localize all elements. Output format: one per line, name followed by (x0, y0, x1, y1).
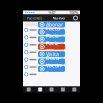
staticText: 9:41 (48, 10, 55, 15)
staticText: Abonar (46, 21, 63, 28)
button[interactable]: Tab (34, 86, 46, 92)
staticText: Vacuna (46, 62, 63, 76)
button[interactable]: Vacuna (38, 66, 65, 72)
staticText: Documento (46, 54, 62, 69)
button[interactable]: Pacientes (25, 15, 43, 21)
staticText: Nuevo (52, 15, 64, 21)
staticText: Factura (46, 25, 62, 39)
button[interactable]: Tab (69, 86, 80, 92)
button[interactable]: Tab (57, 86, 69, 92)
button[interactable]: Factura (38, 29, 65, 35)
button[interactable]: Tab (46, 86, 57, 92)
button[interactable]: Row (23, 41, 39, 48)
button[interactable]: Documento (38, 58, 65, 64)
staticText: Paciente (46, 40, 61, 54)
button[interactable]: Add (73, 16, 77, 20)
staticText: ••••• (25, 10, 35, 15)
staticText: Visita (46, 51, 59, 58)
button[interactable]: Row (23, 63, 39, 71)
button[interactable]: Paciente (38, 36, 65, 42)
button[interactable]: Row (23, 71, 39, 78)
button[interactable]: Row (23, 34, 39, 41)
button[interactable]: Row (23, 26, 39, 34)
button[interactable]: Abonar (38, 21, 65, 27)
staticText: 100% (69, 10, 78, 15)
button[interactable]: Paciente (38, 44, 65, 50)
button[interactable]: Tab (23, 86, 34, 92)
button[interactable]: Row (23, 56, 39, 63)
staticText: Paciente (46, 32, 61, 46)
staticText: Pacientes (26, 15, 42, 21)
button[interactable]: Row (23, 48, 39, 56)
button[interactable]: Visita (38, 51, 65, 57)
